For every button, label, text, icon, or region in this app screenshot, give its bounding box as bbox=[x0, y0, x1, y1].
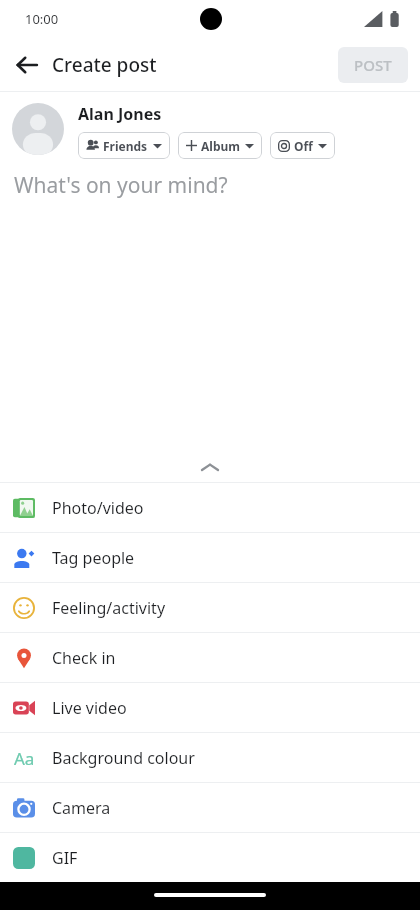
staticText: Feeling/activity bbox=[52, 597, 166, 619]
staticText: Camera bbox=[52, 797, 111, 819]
button[interactable]: Back bbox=[6, 44, 48, 86]
staticText: Tag people bbox=[52, 547, 135, 569]
staticText: Aa bbox=[14, 747, 35, 770]
button[interactable]: Collapse bbox=[0, 452, 420, 482]
button[interactable]: POST bbox=[338, 47, 408, 83]
button[interactable]: Check in bbox=[0, 633, 420, 682]
staticText: Alan Jones bbox=[78, 103, 162, 125]
button[interactable]: Photo/video bbox=[0, 483, 420, 532]
staticText: Album bbox=[201, 138, 240, 154]
staticText: Live video bbox=[52, 697, 127, 719]
staticText: Create post bbox=[52, 52, 157, 78]
button[interactable]: Off bbox=[270, 132, 335, 159]
staticText: Check in bbox=[52, 647, 116, 669]
staticText: GIF bbox=[52, 847, 78, 869]
staticText: 10:00 bbox=[25, 10, 59, 28]
button[interactable]: Friends bbox=[78, 132, 170, 159]
staticText: Friends bbox=[103, 138, 148, 154]
button[interactable]: Feeling/activity bbox=[0, 583, 420, 632]
staticText: What's on your mind? bbox=[14, 171, 228, 200]
staticText: POST bbox=[354, 55, 392, 75]
button[interactable]: Aa bbox=[0, 733, 420, 782]
button[interactable]: Live video bbox=[0, 683, 420, 732]
button[interactable]: GIF bbox=[0, 833, 420, 882]
staticText: Off bbox=[294, 138, 313, 154]
button[interactable]: Tag people bbox=[0, 533, 420, 582]
button[interactable]: Camera bbox=[0, 783, 420, 832]
staticText: Background colour bbox=[52, 747, 195, 769]
staticText: Photo/video bbox=[52, 497, 144, 519]
button[interactable]: Album bbox=[178, 132, 262, 159]
